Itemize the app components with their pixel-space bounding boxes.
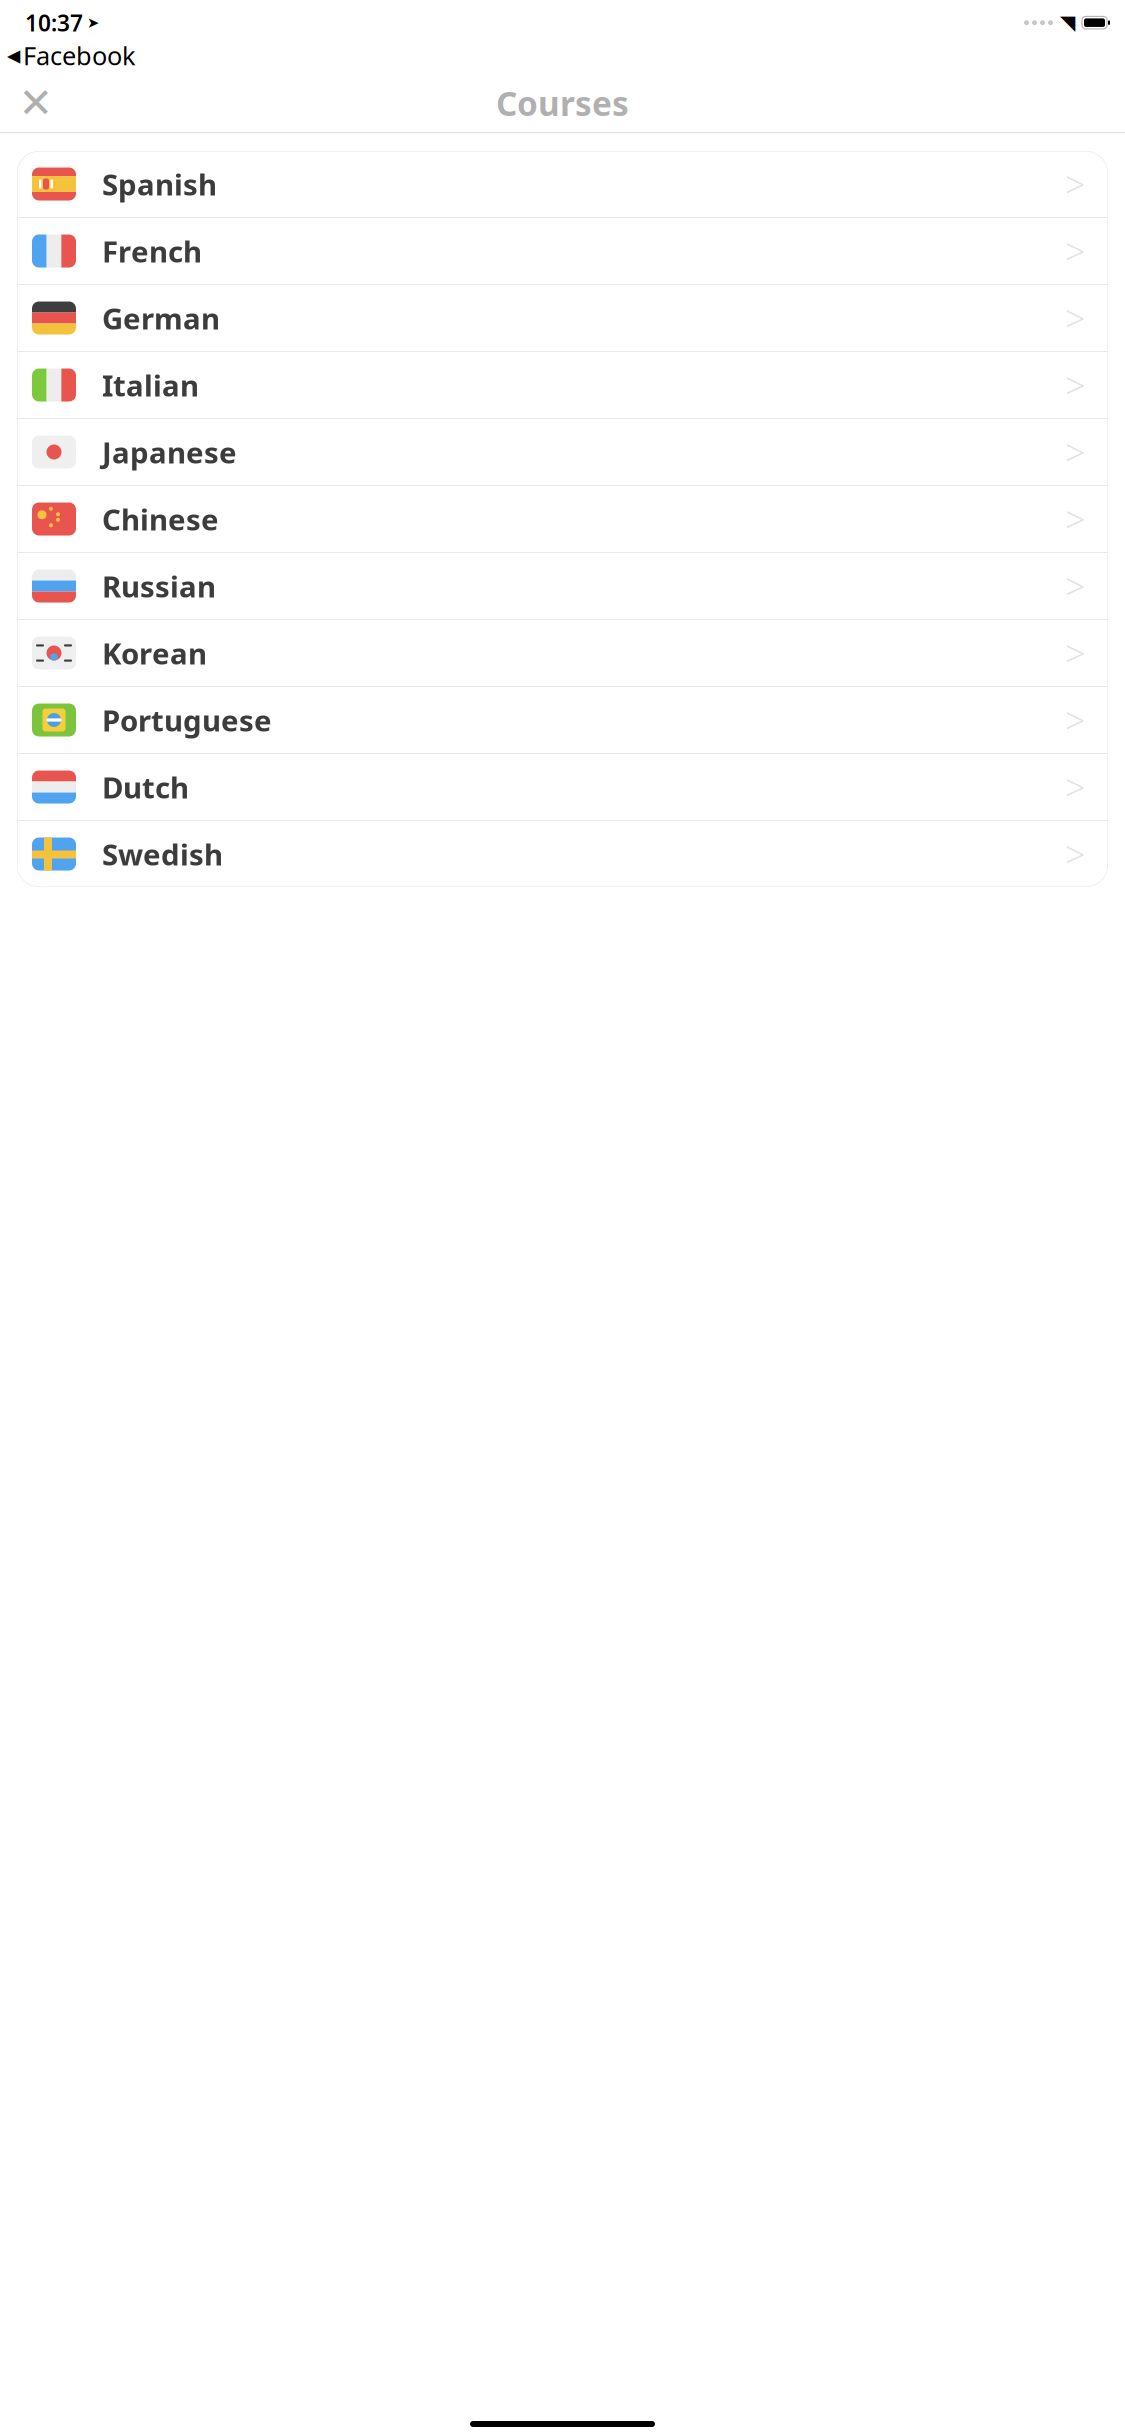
button[interactable]: Italian	[17, 352, 1108, 419]
staticText: Italian	[102, 365, 199, 404]
staticText: ◥	[1060, 11, 1075, 34]
staticText: Swedish	[102, 834, 223, 873]
staticText: >	[1065, 495, 1086, 543]
staticText: >	[1065, 227, 1086, 275]
button[interactable]: Korean	[17, 620, 1108, 687]
staticText: ➤	[87, 14, 99, 31]
staticText: >	[1065, 160, 1086, 208]
button[interactable]: Dutch	[17, 754, 1108, 821]
staticText: >	[1065, 294, 1086, 342]
staticText: German	[102, 298, 220, 337]
staticText: Japanese	[102, 432, 237, 471]
button[interactable]: Swedish	[17, 821, 1108, 887]
staticText: >	[1065, 562, 1086, 610]
button[interactable]: French	[17, 218, 1108, 285]
staticText: ✕	[18, 79, 53, 126]
staticText: 10:37	[25, 8, 83, 38]
staticText: Korean	[102, 633, 207, 672]
staticText: Courses	[496, 81, 629, 125]
staticText: >	[1065, 696, 1086, 744]
button[interactable]: Portuguese	[17, 687, 1108, 754]
staticText: >	[1065, 763, 1086, 811]
button[interactable]: Close	[12, 79, 60, 127]
staticText: Dutch	[102, 767, 189, 806]
staticText: Facebook	[23, 39, 136, 72]
staticText: Russian	[102, 566, 216, 605]
staticText: >	[1065, 830, 1086, 878]
staticText: French	[102, 231, 202, 270]
button[interactable]: Spanish	[17, 151, 1108, 218]
staticText: >	[1065, 428, 1086, 476]
staticText: >	[1065, 629, 1086, 677]
button[interactable]: Russian	[17, 553, 1108, 620]
staticText: Portuguese	[102, 700, 272, 739]
staticText: ◀	[7, 46, 20, 65]
button[interactable]: German	[17, 285, 1108, 352]
button[interactable]: Chinese	[17, 486, 1108, 553]
staticText: >	[1065, 361, 1086, 409]
staticText: Chinese	[102, 499, 219, 538]
button[interactable]: Japanese	[17, 419, 1108, 486]
staticText: Spanish	[102, 164, 217, 203]
